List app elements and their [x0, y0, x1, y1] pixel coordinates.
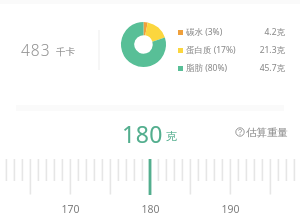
button[interactable]: 脂肪 (80%): [0, 60, 300, 74]
button[interactable]: 重量标尺: [0, 159, 300, 199]
staticText: 190: [221, 202, 240, 216]
staticText: 克: [166, 129, 177, 143]
staticText: 45.7克: [259, 62, 285, 74]
staticText: 21.3克: [259, 44, 285, 56]
staticText: 碳水 (3%): [186, 26, 223, 38]
button[interactable]: 蛋白质 (17%): [0, 42, 300, 56]
button[interactable]: 碳水 (3%): [0, 24, 300, 38]
button[interactable]: 估算重量说明: [235, 125, 288, 139]
staticText: 蛋白质 (17%): [186, 44, 236, 56]
staticText: 估算重量: [246, 126, 288, 139]
staticText: 4.2克: [264, 26, 285, 38]
staticText: 180: [122, 118, 163, 149]
staticText: 483: [21, 39, 51, 60]
staticText: 脂肪 (80%): [186, 62, 228, 74]
staticText: 170: [61, 202, 80, 216]
staticText: 180: [141, 202, 160, 216]
staticText: 千卡: [56, 46, 75, 58]
